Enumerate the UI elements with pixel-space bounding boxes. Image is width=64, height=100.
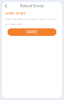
staticText: Please read these terms carefully before… <box>5 17 58 20</box>
staticText: Terms of Service <box>20 4 44 8</box>
staticText: I AGREE <box>26 30 38 34</box>
button[interactable]: Back <box>2 2 10 10</box>
staticText: Terms of Use <box>5 11 26 15</box>
button[interactable]: I AGREE <box>7 28 56 36</box>
staticText: Last updated 2024 <box>5 22 22 25</box>
